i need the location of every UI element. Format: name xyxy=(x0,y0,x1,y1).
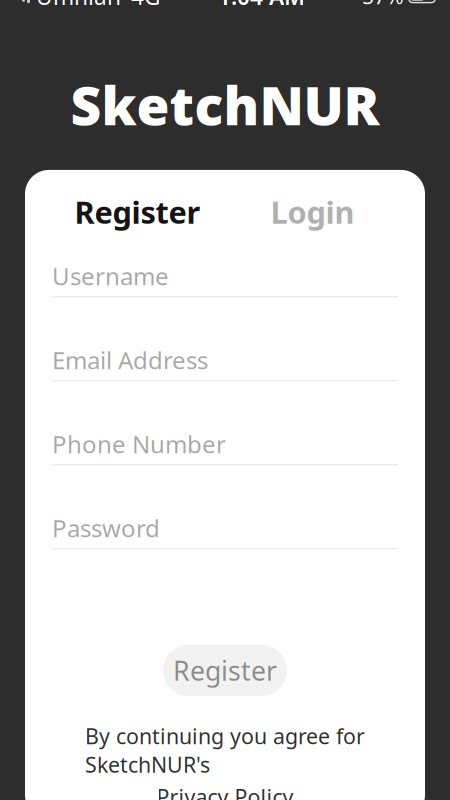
staticText: Umniah xyxy=(36,0,121,11)
staticText: Login xyxy=(270,192,354,232)
button[interactable]: Register xyxy=(50,190,225,234)
staticText: 1:04 AM xyxy=(218,0,305,11)
staticText: Email Address xyxy=(52,344,208,376)
button[interactable]: Login xyxy=(225,190,400,234)
staticText: Username xyxy=(52,260,169,292)
staticText: Register xyxy=(173,653,277,688)
staticText: By continuing you agree for SketchNUR's xyxy=(85,722,365,779)
staticText: Privacy Policy xyxy=(156,783,293,800)
staticText: 57% xyxy=(362,0,404,10)
staticText: SketchNUR xyxy=(70,69,379,140)
staticText: Register xyxy=(74,192,200,232)
button[interactable]: Register xyxy=(163,645,287,696)
staticText: 4G xyxy=(131,0,161,11)
staticText: Password xyxy=(52,512,160,544)
staticText: Phone Number xyxy=(52,428,226,460)
